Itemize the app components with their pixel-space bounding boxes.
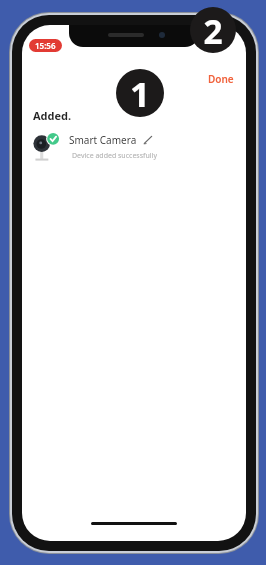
- button[interactable]: Smart Camera: [30, 130, 238, 170]
- button[interactable]: Done: [204, 69, 238, 89]
- staticText: Done: [208, 72, 234, 86]
- staticText: 1: [130, 70, 150, 117]
- staticText: 2: [203, 8, 223, 53]
- button[interactable]: Rename device: [142, 134, 154, 146]
- staticText: 15:56: [35, 40, 56, 51]
- staticText: Smart Camera: [69, 133, 137, 147]
- staticText: Added.: [33, 108, 72, 123]
- staticText: Device added successfully: [72, 151, 157, 161]
